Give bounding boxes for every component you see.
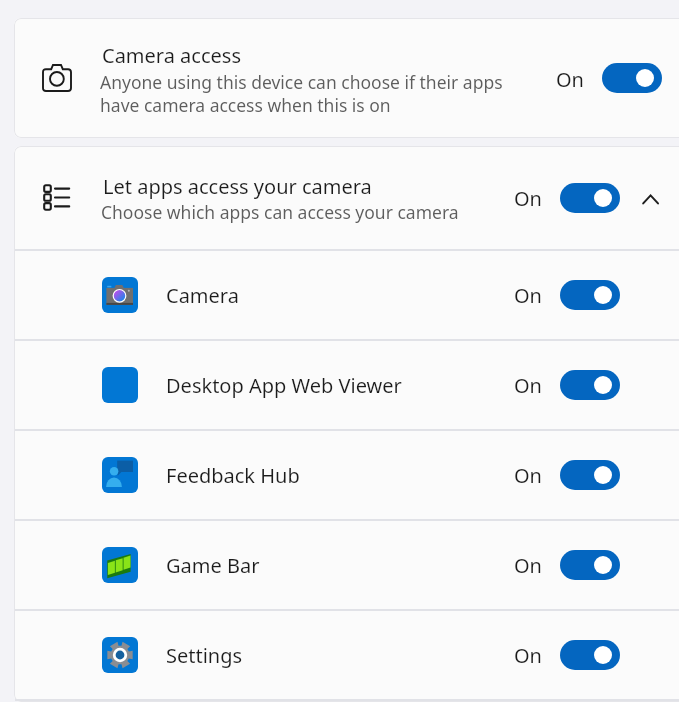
staticText: On xyxy=(514,282,542,309)
button[interactable]: Game Bar icon xyxy=(15,521,679,610)
button[interactable]: Settings camera access, on xyxy=(560,640,620,670)
staticText: Choose which apps can access your camera xyxy=(101,200,459,224)
other: Game Bar icon xyxy=(102,547,138,583)
staticText: Feedback Hub xyxy=(166,462,300,489)
staticText: On xyxy=(514,462,542,489)
button[interactable]: Feedback Hub icon xyxy=(15,431,679,520)
button[interactable]: Camera access xyxy=(14,18,679,138)
other: Feedback Hub icon xyxy=(102,457,138,493)
button[interactable]: Let apps access your camera, on xyxy=(560,183,620,213)
button[interactable]: Settings icon xyxy=(15,611,679,700)
other: Settings icon xyxy=(102,637,138,673)
staticText: On xyxy=(514,642,542,669)
staticText: Settings xyxy=(166,642,243,669)
staticText: Game Bar xyxy=(166,552,260,579)
staticText: Anyone using this device can choose if t… xyxy=(100,70,503,117)
button[interactable]: Camera access, on xyxy=(602,63,662,93)
staticText: Camera access xyxy=(102,42,241,69)
staticText: Desktop App Web Viewer xyxy=(166,372,402,399)
other: Camera app icon xyxy=(102,277,138,313)
button[interactable]: Camera camera access, on xyxy=(560,280,620,310)
staticText: On xyxy=(514,552,542,579)
staticText: On xyxy=(514,185,542,212)
button[interactable]: Desktop App Web Viewer camera access, on xyxy=(560,370,620,400)
staticText: On xyxy=(514,372,542,399)
staticText: Camera xyxy=(166,282,239,309)
button[interactable]: Feedback Hub camera access, on xyxy=(560,460,620,490)
button[interactable]: Collapse xyxy=(634,182,668,216)
staticText: Let apps access your camera xyxy=(103,173,372,200)
button[interactable]: Let apps access your camera xyxy=(15,147,679,250)
staticText: On xyxy=(556,66,584,93)
button[interactable]: Game Bar camera access, on xyxy=(560,550,620,580)
button[interactable]: Desktop App Web Viewer icon xyxy=(15,341,679,430)
other: Desktop App Web Viewer icon xyxy=(102,367,138,403)
button[interactable]: Camera app icon xyxy=(15,251,679,340)
